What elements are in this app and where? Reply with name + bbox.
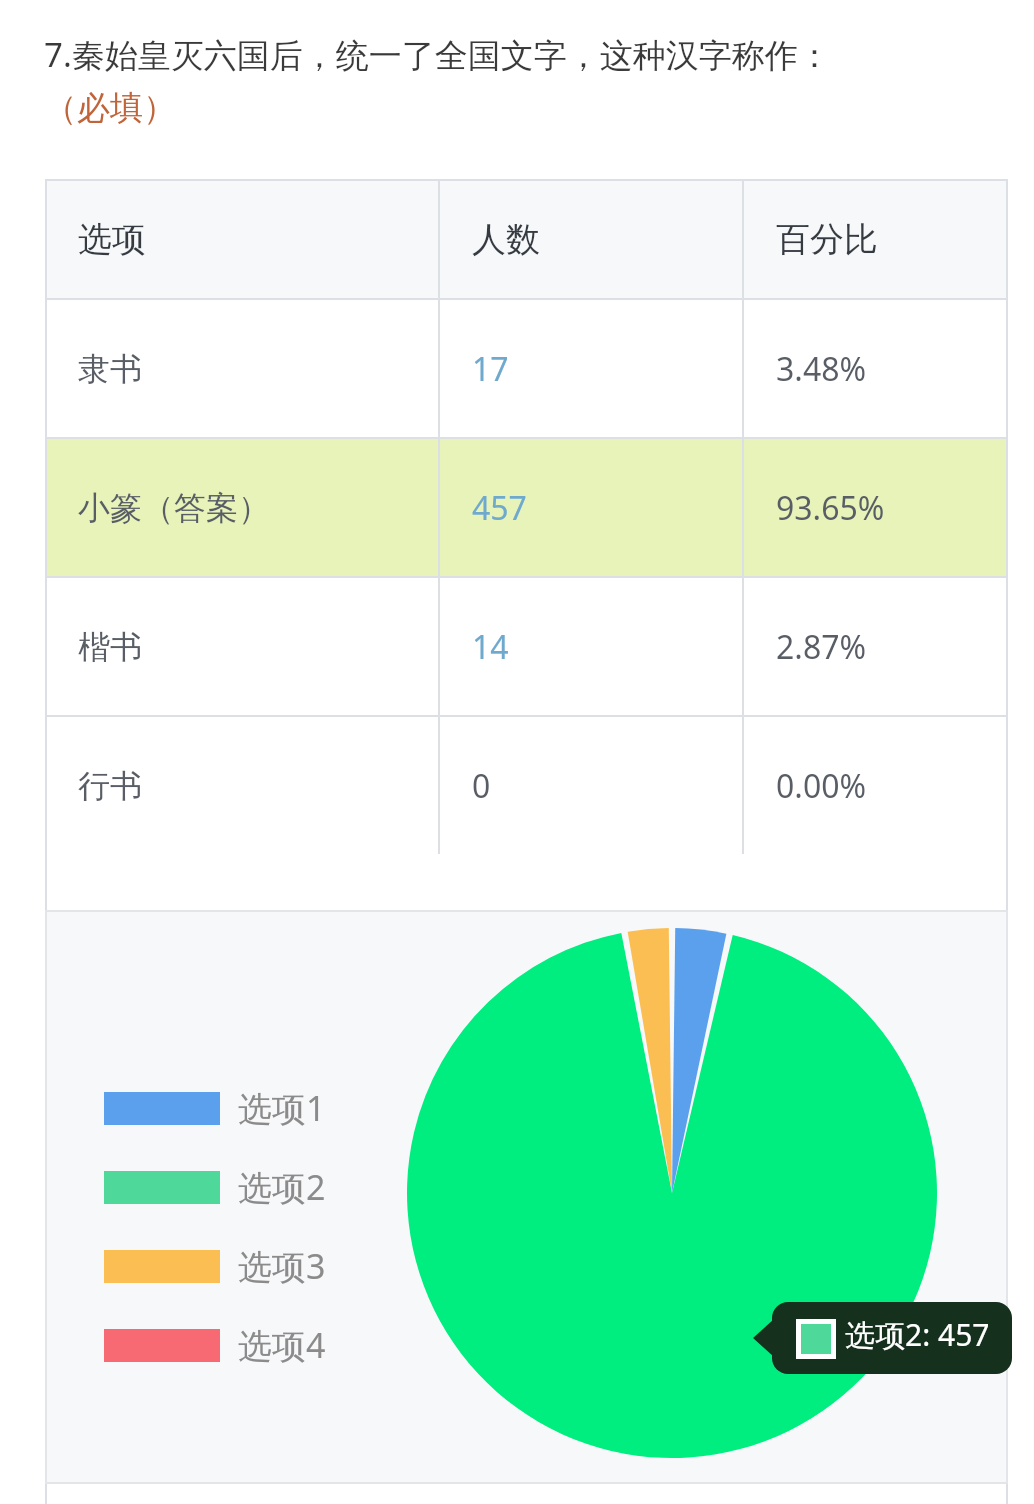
staticText: （必填） (44, 87, 176, 129)
button[interactable]: 选项3 (104, 1243, 326, 1289)
staticText: 7.秦始皇灭六国后，统一了全国文字，这种汉字称作： (44, 32, 831, 77)
staticText: 选项2: 457 (845, 1314, 990, 1355)
button[interactable]: 选项4 (104, 1322, 326, 1368)
staticText: 457 (472, 486, 527, 530)
staticText: 0 (472, 764, 491, 808)
button[interactable]: 选项2 (104, 1164, 326, 1210)
button[interactable]: Tooltip 选项2: 457 (845, 1314, 990, 1355)
button[interactable]: 行书 (46, 717, 1007, 854)
staticText: 2.87% (776, 625, 867, 669)
button[interactable]: 小篆（答案） (46, 439, 1007, 576)
staticText: 3.48% (776, 347, 867, 391)
staticText: 隶书 (78, 349, 142, 389)
staticText: 选项1 (238, 1085, 326, 1131)
staticText: 选项3 (238, 1243, 326, 1289)
staticText: 小篆（答案） (78, 488, 270, 528)
staticText: 93.65% (776, 486, 885, 530)
staticText: 行书 (78, 766, 142, 806)
staticText: 百分比 (776, 218, 878, 261)
staticText: 选项4 (238, 1322, 326, 1368)
staticText: 14 (472, 625, 509, 669)
staticText: 选项2 (238, 1164, 326, 1210)
staticText: 人数 (472, 218, 540, 261)
staticText: 选项 (78, 218, 146, 261)
staticText: 0.00% (776, 764, 867, 808)
button[interactable]: 隶书 (46, 300, 1007, 437)
staticText: 楷书 (78, 627, 142, 667)
button[interactable]: 选项1 (104, 1085, 326, 1131)
staticText: 17 (472, 347, 509, 391)
button[interactable]: 楷书 (46, 578, 1007, 715)
